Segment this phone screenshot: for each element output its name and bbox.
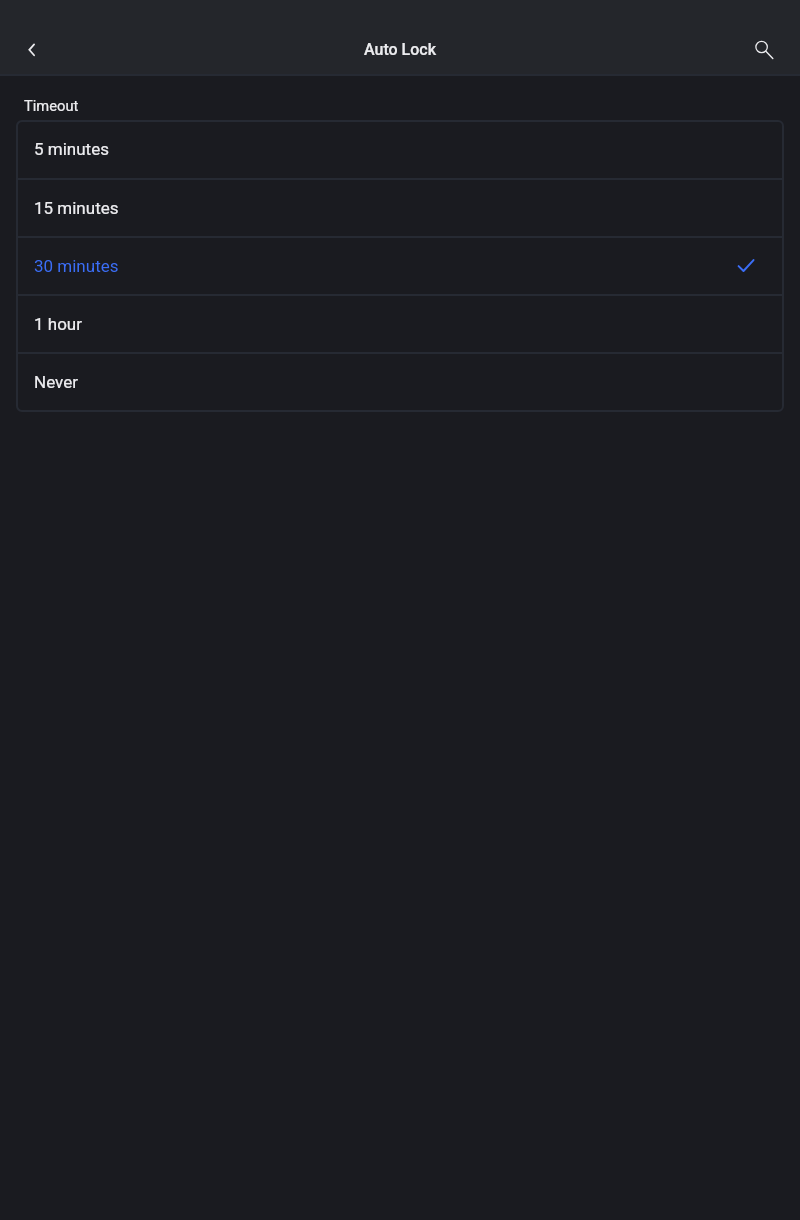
button[interactable]: 1 hour <box>16 296 784 352</box>
staticText: 5 minutes <box>34 139 109 159</box>
button[interactable]: Back <box>7 25 55 73</box>
button[interactable]: 30 minutes <box>16 238 784 294</box>
staticText: Auto Lock <box>0 40 800 59</box>
staticText: 1 hour <box>34 314 82 334</box>
button[interactable]: Never <box>16 354 784 410</box>
staticText: Timeout <box>24 97 79 114</box>
button[interactable]: 5 minutes <box>16 120 784 178</box>
staticText: 15 minutes <box>34 198 119 218</box>
staticText: Never <box>34 372 78 392</box>
staticText: 30 minutes <box>34 256 119 276</box>
button[interactable]: 15 minutes <box>16 180 784 236</box>
button[interactable]: Search <box>737 25 785 73</box>
